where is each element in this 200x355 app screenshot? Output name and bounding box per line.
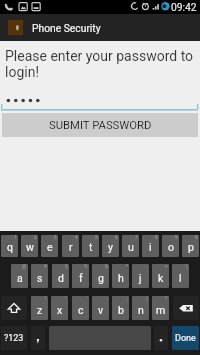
staticText: n bbox=[138, 304, 144, 316]
staticText: g bbox=[98, 272, 104, 284]
button[interactable]: r bbox=[62, 235, 79, 257]
staticText: f bbox=[79, 272, 83, 284]
staticText: l bbox=[179, 272, 182, 284]
staticText: x bbox=[57, 304, 63, 316]
staticText: s bbox=[37, 272, 43, 284]
staticText: " bbox=[65, 296, 67, 301]
staticText: & bbox=[105, 264, 108, 269]
button[interactable]: w bbox=[21, 235, 38, 257]
staticText: / bbox=[146, 296, 148, 301]
staticText: d bbox=[58, 272, 64, 284]
staticText: : bbox=[106, 296, 108, 301]
staticText: Phone Security bbox=[32, 22, 101, 34]
button[interactable]: k bbox=[152, 264, 169, 288]
staticText: ' bbox=[87, 296, 88, 301]
staticText: 3 bbox=[54, 235, 57, 240]
staticText: j bbox=[139, 272, 142, 284]
staticText: p bbox=[188, 241, 194, 253]
staticText: 1 bbox=[14, 235, 17, 240]
staticText: o bbox=[168, 241, 174, 253]
staticText: 4 bbox=[75, 235, 78, 240]
button[interactable]: a bbox=[11, 264, 28, 288]
staticText: ? bbox=[165, 296, 168, 301]
button[interactable]: j bbox=[132, 264, 149, 288]
staticText: k bbox=[158, 272, 164, 284]
staticText: % bbox=[84, 264, 88, 269]
button[interactable]: Period bbox=[154, 326, 168, 350]
button[interactable]: s bbox=[31, 264, 48, 288]
button[interactable]: n bbox=[132, 296, 149, 320]
staticText: h bbox=[118, 272, 124, 284]
button[interactable]: m bbox=[152, 296, 169, 320]
staticText: 0 bbox=[195, 235, 198, 240]
staticText: r bbox=[69, 241, 73, 253]
button[interactable]: c bbox=[72, 296, 89, 320]
staticText: i bbox=[149, 241, 152, 253]
staticText: m bbox=[156, 304, 166, 316]
button[interactable]: f bbox=[72, 264, 89, 288]
button[interactable]: h bbox=[112, 264, 129, 288]
staticText: e bbox=[47, 241, 53, 253]
button[interactable]: l bbox=[172, 264, 189, 288]
staticText: q bbox=[7, 241, 13, 253]
staticText: # bbox=[44, 264, 47, 269]
staticText: t bbox=[89, 241, 93, 253]
staticText: @ bbox=[22, 264, 27, 269]
staticText: $ bbox=[65, 264, 68, 269]
staticText: SUBMIT PASSWORD bbox=[49, 119, 152, 132]
staticText: ! bbox=[45, 296, 47, 301]
button[interactable]: o bbox=[162, 235, 179, 257]
staticText: 6 bbox=[115, 235, 118, 240]
button[interactable]: q bbox=[1, 235, 18, 257]
button[interactable]: g bbox=[92, 264, 109, 288]
staticText: Done bbox=[175, 333, 196, 344]
button[interactable]: d bbox=[52, 264, 69, 288]
staticText: v bbox=[98, 304, 104, 316]
button[interactable]: u bbox=[122, 235, 139, 257]
button[interactable]: b bbox=[112, 296, 129, 320]
button[interactable]: x bbox=[51, 296, 68, 320]
staticText: 8 bbox=[155, 235, 158, 240]
staticText: z bbox=[37, 304, 43, 316]
button[interactable]: e bbox=[41, 235, 58, 257]
staticText: ( bbox=[186, 264, 188, 269]
button[interactable]: p bbox=[182, 235, 199, 257]
staticText: 2 bbox=[34, 235, 37, 240]
staticText: 7 bbox=[135, 235, 138, 240]
staticText: + bbox=[165, 264, 168, 269]
staticText: ; bbox=[127, 296, 128, 301]
staticText: - bbox=[146, 264, 148, 269]
button[interactable]: t bbox=[82, 235, 99, 257]
staticText: c bbox=[78, 304, 84, 316]
button[interactable]: Shift bbox=[1, 296, 27, 320]
staticText: 09:42 bbox=[171, 1, 197, 13]
button[interactable]: y bbox=[102, 235, 119, 257]
button[interactable]: v bbox=[92, 296, 109, 320]
staticText: 9 bbox=[175, 235, 178, 240]
staticText: ?123 bbox=[4, 333, 24, 344]
staticText: u bbox=[128, 241, 134, 253]
button[interactable]: Comma bbox=[31, 326, 45, 350]
button[interactable]: i bbox=[142, 235, 159, 257]
staticText: Please enter your password to login! bbox=[5, 48, 194, 80]
button[interactable]: Done bbox=[172, 326, 199, 350]
staticText: y bbox=[108, 241, 113, 253]
button[interactable]: Backspace bbox=[173, 296, 199, 320]
staticText: a bbox=[17, 272, 23, 284]
staticText: * bbox=[126, 264, 128, 269]
button[interactable]: ?123 bbox=[1, 326, 27, 350]
button[interactable]: SUBMIT PASSWORD bbox=[2, 113, 198, 137]
staticText: b bbox=[118, 304, 124, 316]
staticText: w bbox=[26, 241, 34, 253]
button[interactable]: z bbox=[31, 296, 48, 320]
staticText: 5 bbox=[95, 235, 98, 240]
